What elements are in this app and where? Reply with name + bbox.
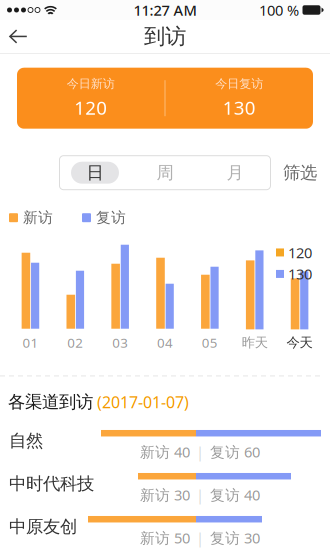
staticText: 新访 [23,209,53,227]
staticText: 04 [157,334,173,351]
button[interactable]: 日 [60,157,130,189]
staticText: 筛选 [283,162,317,183]
staticText: 中时代科技 [9,473,94,494]
staticText: 新访 50 [140,528,190,547]
staticText: 复访 60 [210,442,260,461]
staticText: 11:27 AM [133,0,196,20]
staticText: 02 [67,334,83,351]
button[interactable]: Back [0,20,40,53]
staticText: (2017-01-07) [93,391,189,413]
staticText: 03 [112,334,128,351]
staticText: 01 [22,334,38,351]
staticText: 中原友创 [9,516,77,537]
staticText: | [196,528,204,547]
staticText: 自然 [9,430,43,451]
staticText: 各渠道到访 [8,391,93,413]
staticText: 今日新访 [67,76,115,91]
staticText: 日 [86,162,103,183]
staticText: 今天 [287,334,313,351]
staticText: 新访 30 [140,485,190,504]
staticText: 周 [156,162,173,183]
button[interactable]: 周 [130,157,200,189]
staticText: 100 % [259,0,299,20]
staticText: 120 [288,243,312,262]
staticText: 今日复访 [215,76,263,91]
staticText: 120 [74,95,107,120]
staticText: 月 [226,162,243,183]
staticText: 05 [202,334,218,351]
staticText: 昨天 [242,334,268,351]
button[interactable]: 筛选 [270,153,330,192]
staticText: 到访 [144,23,186,50]
staticText: | [196,442,204,461]
staticText: 新访 40 [140,442,190,461]
staticText: 复访 40 [210,485,260,504]
staticText: | [196,485,204,504]
staticText: 130 [223,95,256,120]
staticText: 130 [288,264,312,284]
staticText: 复访 30 [210,528,260,547]
button[interactable]: 月 [200,157,270,189]
staticText: 复访 [96,209,126,227]
